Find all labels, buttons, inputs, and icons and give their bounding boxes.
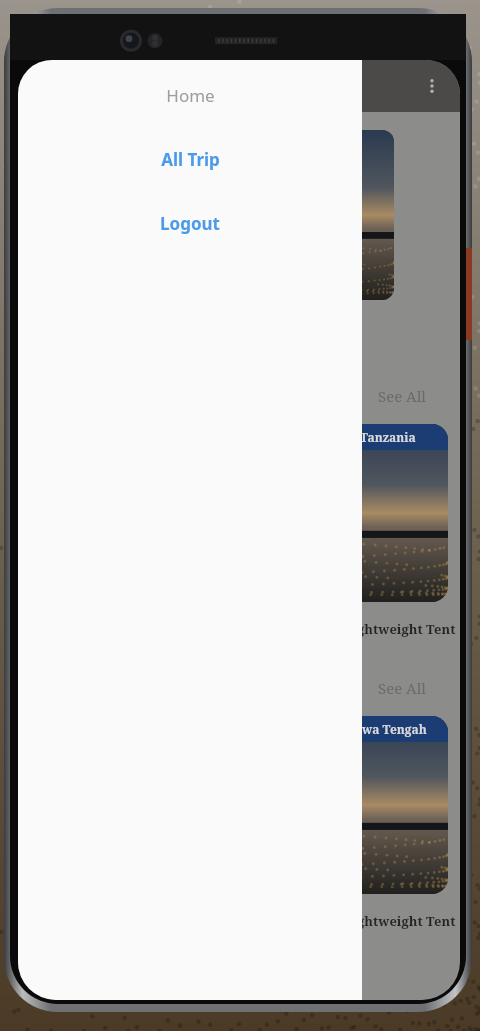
- staticText: Logout: [160, 212, 220, 235]
- staticText: See All: [378, 386, 426, 406]
- staticText: Jawa Tengah: [350, 721, 427, 737]
- button[interactable]: More options: [414, 68, 450, 104]
- button[interactable]: Home: [18, 80, 362, 110]
- button[interactable]: All Trip: [18, 144, 362, 174]
- staticText: Home: [166, 84, 215, 107]
- button[interactable]: See All: [372, 384, 432, 408]
- button[interactable]: [308, 130, 394, 300]
- staticText: Tanzania: [360, 429, 416, 445]
- staticText: See All: [378, 678, 426, 698]
- staticText: Lightweight Tent: [344, 912, 456, 930]
- button[interactable]: Tanzania: [328, 424, 448, 602]
- staticText: All Trip: [161, 148, 220, 171]
- button[interactable]: Jawa Tengah: [328, 716, 448, 894]
- staticText: Lightweight Tent: [344, 620, 456, 638]
- button[interactable]: See All: [372, 676, 432, 700]
- button[interactable]: [94, 122, 184, 306]
- button[interactable]: Logout: [18, 208, 362, 238]
